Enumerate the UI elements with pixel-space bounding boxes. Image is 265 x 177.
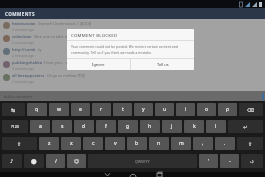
button[interactable]: r	[92, 103, 111, 116]
button[interactable]: -	[220, 154, 239, 168]
staticText: w	[57, 106, 62, 113]
staticText: u	[163, 106, 167, 113]
button[interactable]: ⬤	[24, 154, 44, 168]
button[interactable]: m	[171, 137, 191, 150]
button[interactable]: p	[218, 103, 237, 116]
staticText: ⇧	[248, 141, 253, 147]
button[interactable]: /	[46, 154, 65, 168]
button[interactable]: pukkingchakka	[0, 58, 265, 71]
button[interactable]: .	[215, 137, 235, 150]
staticText: r	[100, 106, 103, 113]
button[interactable]: k	[184, 120, 204, 133]
button[interactable]: ↹	[2, 103, 25, 116]
button[interactable]: z	[39, 137, 59, 150]
staticText: c	[92, 140, 95, 147]
button[interactable]: f	[96, 120, 116, 133]
staticText: 2 minutes ago	[12, 27, 35, 31]
staticText: Add a comment	[4, 94, 33, 99]
staticText: ♪	[10, 158, 14, 164]
staticText: ⌫	[247, 107, 255, 113]
button[interactable]: Ignore	[67, 59, 130, 70]
button[interactable]: h	[140, 120, 160, 133]
staticText: snbielasin	[12, 34, 32, 39]
button[interactable]: e	[71, 103, 90, 116]
button[interactable]: q	[27, 103, 47, 116]
staticText: f	[105, 123, 107, 130]
staticText: Ignore	[92, 62, 105, 67]
button[interactable]: y	[134, 103, 153, 116]
button[interactable]: ?123	[2, 120, 28, 133]
button[interactable]: ⇧	[2, 137, 37, 150]
button[interactable]: s	[52, 120, 72, 133]
staticText: Your comment could not be posted. We res…	[71, 44, 190, 49]
staticText: o	[205, 106, 209, 113]
button[interactable]: c	[83, 137, 103, 150]
button[interactable]: v	[105, 137, 125, 150]
staticText: 2 minutes ago	[12, 40, 35, 44]
button[interactable]: '	[199, 154, 218, 168]
staticText: ty	[38, 47, 42, 52]
button[interactable]: Tell us	[131, 59, 194, 70]
staticText: COMMENT BLOCKED	[71, 32, 118, 38]
staticText: a	[39, 123, 42, 130]
button[interactable]: a	[30, 120, 50, 133]
staticText: b	[135, 140, 139, 147]
button[interactable]: w	[49, 103, 69, 116]
button[interactable]: u	[155, 103, 174, 116]
button[interactable]: n	[149, 137, 169, 150]
staticText: z	[48, 140, 51, 147]
button[interactable]: l	[206, 120, 226, 133]
button[interactable]: d	[74, 120, 94, 133]
button[interactable]: t	[113, 103, 132, 116]
staticText: g	[126, 123, 130, 130]
button[interactable]: b	[127, 137, 147, 150]
staticText: ↵	[243, 124, 248, 130]
staticText: k	[193, 123, 196, 130]
staticText: s	[61, 123, 64, 130]
staticText: d	[82, 123, 86, 130]
staticText: 2 minutes ago	[12, 79, 35, 83]
staticText: n	[157, 140, 161, 147]
staticText: j	[171, 123, 173, 130]
staticText: Tell us	[157, 62, 169, 67]
staticText: ⇧	[17, 141, 22, 147]
button[interactable]: ♪	[2, 154, 22, 168]
staticText: q	[35, 106, 39, 113]
button[interactable]: http://comb	[0, 45, 265, 58]
staticText: 2 minutes ago	[12, 66, 35, 70]
button[interactable]: ☺	[67, 154, 86, 168]
button[interactable]: x	[61, 137, 81, 150]
button[interactable]: Add a comment	[0, 91, 265, 101]
staticText: :-)	[250, 159, 254, 164]
button[interactable]: j	[162, 120, 182, 133]
staticText: '	[208, 158, 210, 165]
button[interactable]: Back	[94, 172, 120, 177]
staticText: e	[79, 106, 82, 113]
staticText: hanstussian	[12, 21, 36, 26]
staticText: y	[142, 106, 145, 113]
button[interactable]: g	[118, 120, 138, 133]
button[interactable]: Recents	[146, 172, 172, 177]
staticText: Nice one to take media services	[34, 34, 92, 39]
staticText: /	[55, 158, 57, 165]
staticText: t	[122, 106, 124, 113]
button[interactable]: ,	[193, 137, 213, 150]
button[interactable]: QWERTY	[88, 154, 197, 168]
button[interactable]: i	[176, 103, 195, 116]
button[interactable]: ⇧	[237, 137, 263, 150]
button[interactable]: snbielasin	[0, 32, 265, 45]
button[interactable]: ↵	[228, 120, 263, 133]
staticText: all lineupposters	[12, 73, 45, 78]
staticText: p	[226, 106, 230, 113]
staticText: I love you ...maaaa ^^ you are amazing	[44, 60, 115, 65]
button[interactable]: :-)	[241, 154, 263, 168]
staticText: COMMENTS	[5, 11, 35, 17]
staticText: pukkingchakka	[12, 60, 42, 65]
button[interactable]: hanstussian	[0, 19, 265, 32]
staticText: ,	[202, 140, 204, 147]
button[interactable]: Home	[120, 172, 146, 177]
button[interactable]: all lineupposters	[0, 71, 265, 84]
staticText: QWERTY	[135, 159, 150, 164]
button[interactable]: ⌫	[239, 103, 263, 116]
button[interactable]: o	[197, 103, 216, 116]
